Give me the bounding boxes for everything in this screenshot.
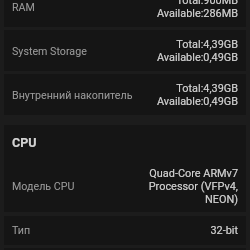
button[interactable]: Тип <box>4 216 246 245</box>
staticText: CPU <box>12 135 37 150</box>
staticText: RAM <box>12 1 35 14</box>
staticText: System Storage <box>12 45 87 58</box>
staticText: Внутренний накопитель <box>12 89 133 102</box>
staticText: Quad-Core ARMv7 Processor (VFPv4, NEON) <box>143 167 238 206</box>
staticText: Total:900MB Available:286MB <box>143 0 238 20</box>
button[interactable]: Модель CPU <box>4 161 246 212</box>
staticText: 32-bit <box>143 224 238 237</box>
staticText: Total:4,39GB Available:0,49GB <box>143 82 238 108</box>
button[interactable]: System Storage <box>4 30 246 71</box>
staticText: Total:4,39GB Available:0,49GB <box>143 38 238 64</box>
staticText: Модель CPU <box>12 180 75 193</box>
button[interactable]: Внутренний накопитель <box>4 74 246 115</box>
button[interactable]: RAM <box>4 0 246 27</box>
staticText: Тип <box>12 224 31 237</box>
